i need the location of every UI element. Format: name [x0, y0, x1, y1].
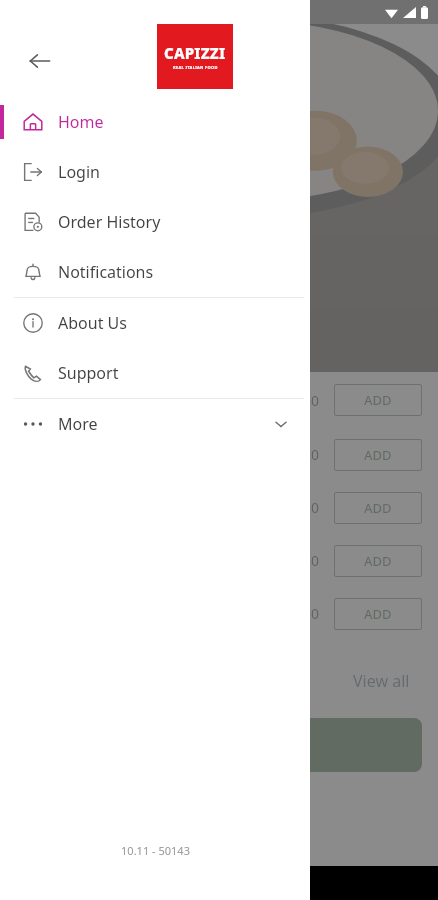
- staticText: View all: [353, 670, 410, 692]
- button[interactable]: ADD: [334, 492, 422, 524]
- staticText: ADD: [364, 552, 392, 570]
- staticText: Order History: [58, 211, 161, 233]
- staticText: Notifications: [58, 261, 154, 283]
- staticText: CAPIZZI: [164, 43, 226, 63]
- button[interactable]: Login: [0, 147, 310, 197]
- staticText: ₹350: [287, 391, 320, 410]
- button[interactable]: Back: [18, 39, 62, 83]
- staticText: ₹380: [287, 551, 320, 570]
- staticText: ADD: [364, 391, 392, 409]
- button[interactable]: Support: [0, 348, 310, 398]
- staticText: Login: [58, 161, 100, 183]
- staticText: REAL ITALIAN FOOD: [173, 65, 218, 70]
- button[interactable]: More: [0, 399, 310, 449]
- staticText: ₹350: [287, 498, 320, 517]
- staticText: ADD: [364, 499, 392, 517]
- button[interactable]: [16, 718, 422, 772]
- staticText: More: [58, 413, 98, 435]
- staticText: ADD: [364, 446, 392, 464]
- staticText: Crispy Chicken: [16, 391, 112, 410]
- staticText: About Us: [58, 312, 127, 334]
- staticText: Support: [58, 362, 119, 384]
- button[interactable]: View all: [349, 666, 414, 696]
- button[interactable]: ADD: [334, 545, 422, 577]
- staticText: 10.11 - 50143: [121, 843, 190, 858]
- button[interactable]: Order History: [0, 197, 310, 247]
- staticText: Home: [58, 111, 104, 133]
- button[interactable]: ADD: [334, 598, 422, 630]
- button[interactable]: Home: [0, 97, 310, 147]
- button[interactable]: ADD: [334, 384, 422, 416]
- staticText: ₹350: [287, 604, 320, 623]
- staticText: ADD: [364, 605, 392, 623]
- staticText: ₹320: [287, 445, 320, 464]
- button[interactable]: About Us: [0, 298, 310, 348]
- button[interactable]: Notifications: [0, 247, 310, 297]
- button[interactable]: ADD: [334, 439, 422, 471]
